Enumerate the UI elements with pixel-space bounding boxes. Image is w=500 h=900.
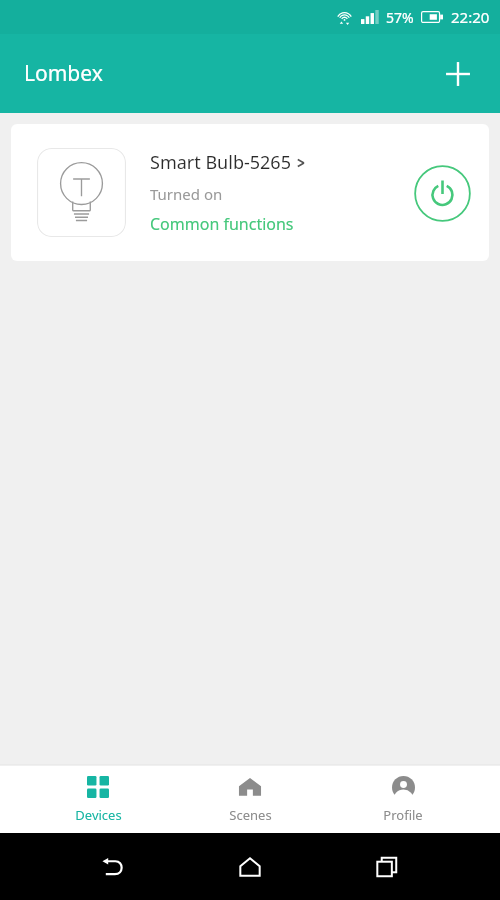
button[interactable]: Smart Bulb-5265 xyxy=(11,124,489,261)
staticText: 57% xyxy=(386,8,414,27)
button[interactable]: Common functions xyxy=(150,213,294,235)
button[interactable]: Home xyxy=(226,843,274,891)
staticText: Smart Bulb-5265 xyxy=(150,150,291,175)
staticText: 22:20 xyxy=(451,7,490,27)
button[interactable]: Profile xyxy=(348,765,458,833)
button[interactable]: Back xyxy=(89,843,137,891)
button[interactable]: Power toggle xyxy=(411,162,473,224)
staticText: Profile xyxy=(383,806,423,824)
button[interactable]: Scenes xyxy=(195,765,305,833)
staticText: Turned on xyxy=(150,184,223,204)
staticText: Lombex xyxy=(24,59,103,88)
staticText: Scenes xyxy=(229,806,272,824)
button[interactable]: Recent apps xyxy=(363,843,411,891)
button[interactable]: Devices xyxy=(43,765,153,833)
button[interactable]: Add device xyxy=(436,52,480,96)
staticText: Devices xyxy=(75,806,122,824)
